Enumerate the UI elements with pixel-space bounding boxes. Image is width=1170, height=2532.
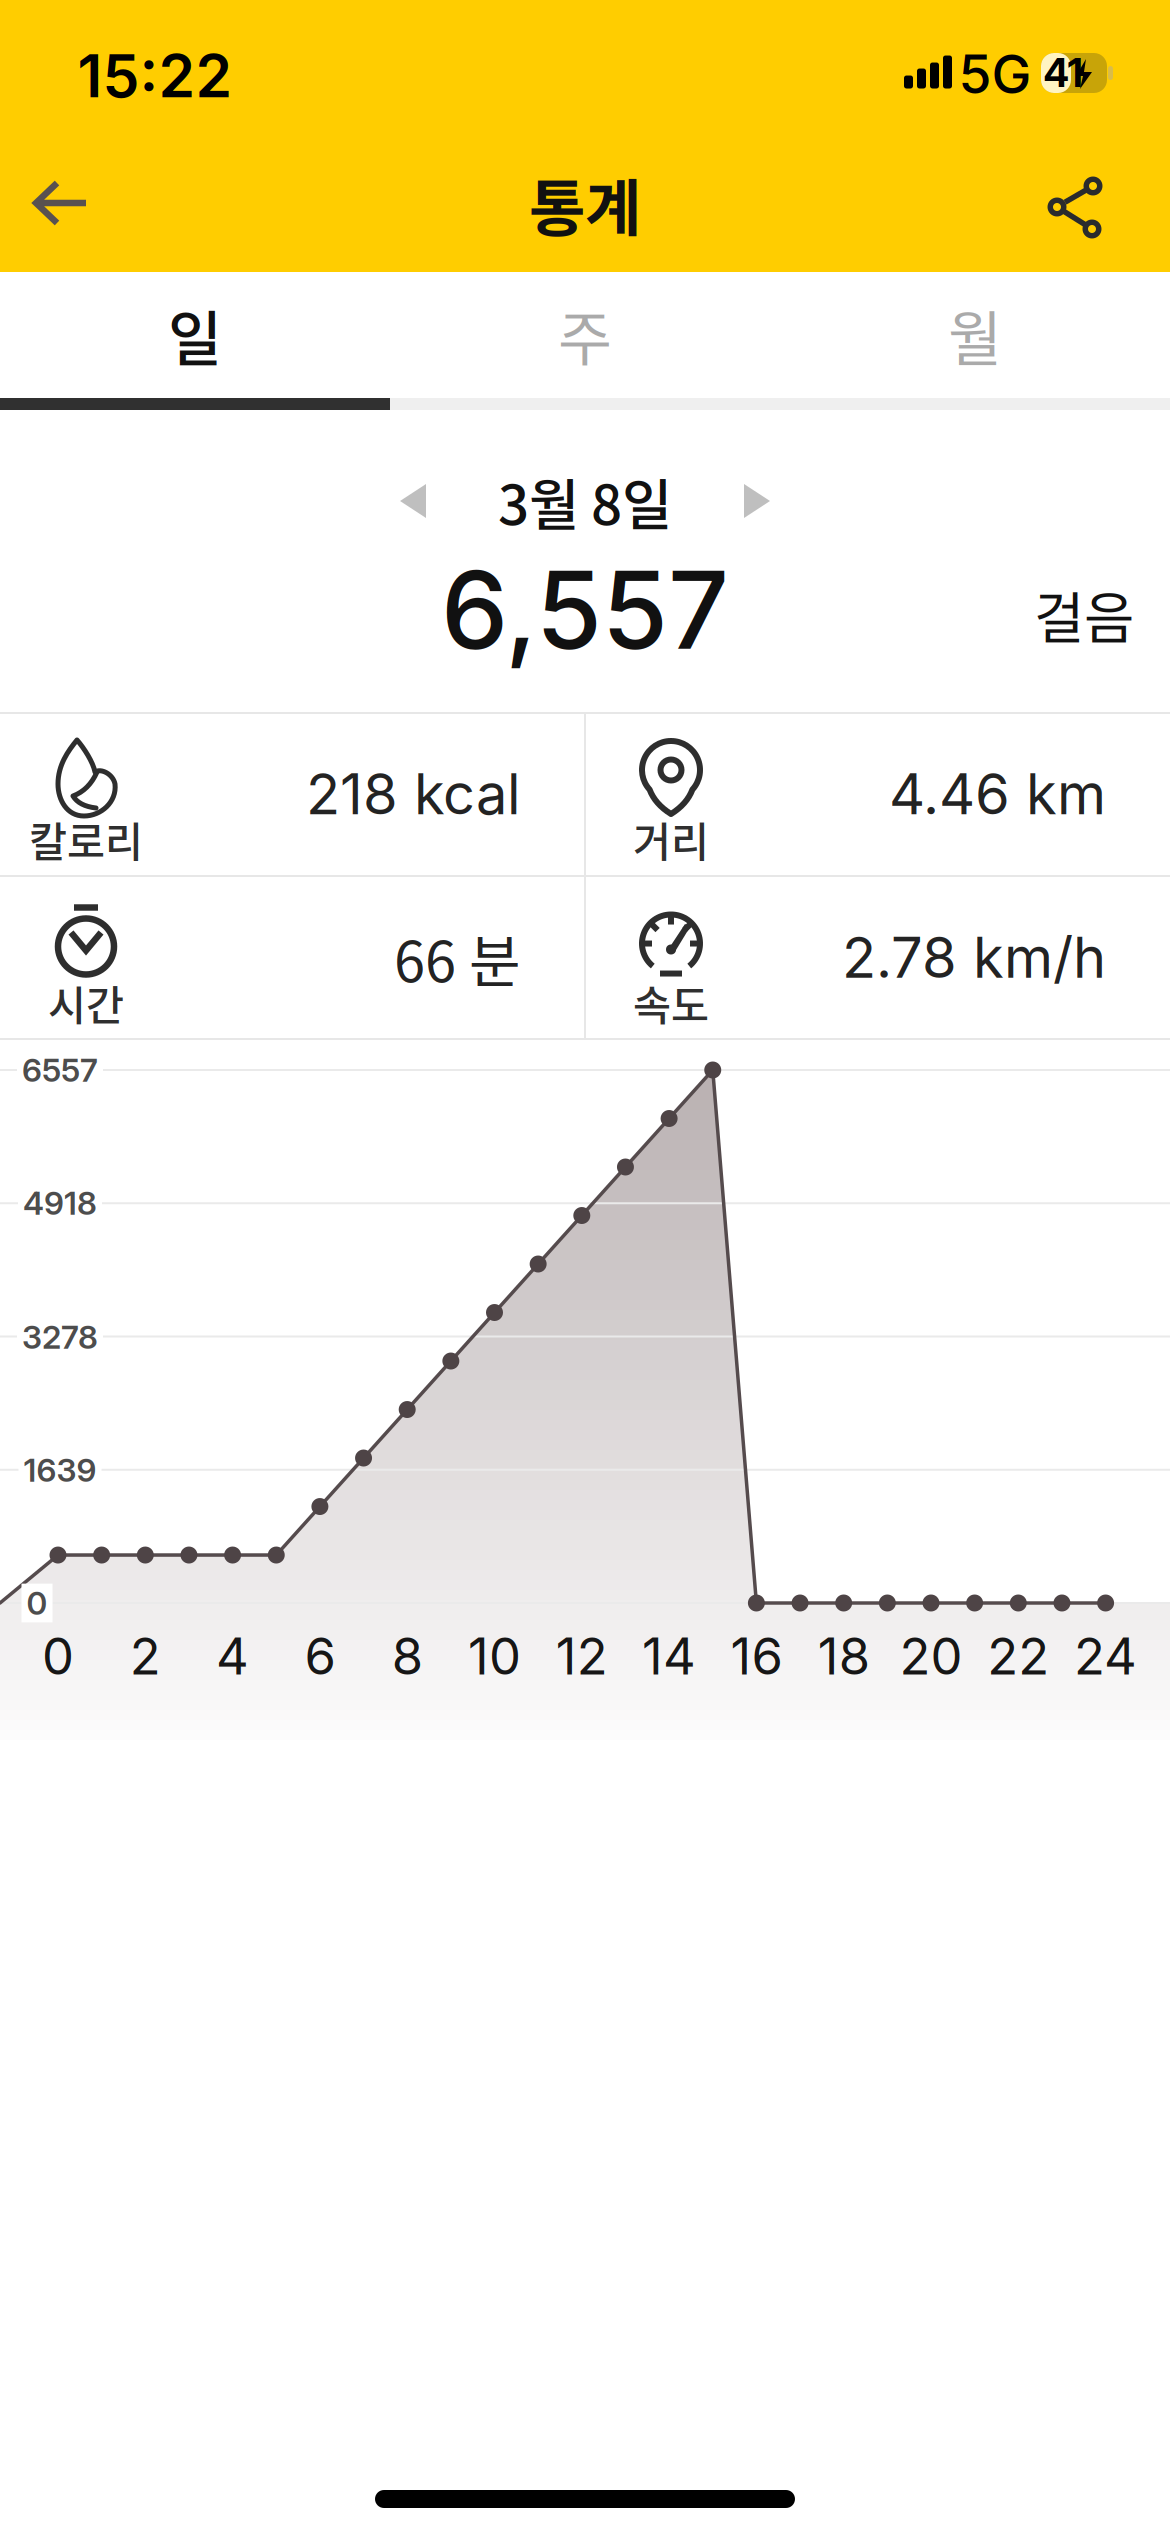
staticText: 10 [468, 1625, 521, 1687]
staticText: 12 [556, 1625, 608, 1687]
button[interactable]: 월 [780, 272, 1170, 398]
staticText: 월 [948, 292, 1002, 377]
staticText: 속도 [633, 973, 709, 1032]
staticText: 5G [958, 42, 1031, 106]
staticText: 4918 [23, 1184, 97, 1222]
staticText: 거리 [633, 809, 709, 869]
button[interactable]: Next day [744, 484, 770, 518]
staticText: 3월 8일 [498, 461, 672, 541]
staticText: 4.46 km [889, 760, 1106, 828]
staticText: 통계 [529, 160, 641, 248]
staticText: 15:22 [77, 40, 232, 111]
button[interactable]: 일 [0, 272, 390, 398]
staticText: 18 [818, 1625, 870, 1687]
button[interactable]: Back [33, 180, 89, 226]
button[interactable]: Previous day [400, 484, 426, 518]
staticText: 3278 [22, 1318, 98, 1356]
staticText: 22 [987, 1625, 1049, 1687]
staticText: 16 [730, 1625, 782, 1687]
button[interactable]: Share [1042, 175, 1106, 239]
staticText: 218 kcal [306, 760, 521, 828]
staticText: 4 [216, 1625, 249, 1687]
staticText: 0 [26, 1584, 47, 1622]
staticText: 주 [558, 292, 612, 377]
staticText: 6 [304, 1625, 335, 1687]
staticText: 6557 [22, 1051, 98, 1089]
staticText: 칼로리 [29, 809, 143, 869]
staticText: 일 [168, 292, 222, 377]
staticText: 0 [42, 1625, 74, 1687]
staticText: 14 [642, 1625, 696, 1687]
staticText: 41 [1043, 50, 1082, 96]
staticText: 20 [899, 1625, 962, 1687]
staticText: 2.78 km/h [842, 924, 1106, 991]
staticText: 66 분 [394, 917, 521, 998]
staticText: 2 [130, 1625, 161, 1687]
staticText: 걸음 [1034, 574, 1134, 654]
staticText: 8 [392, 1625, 423, 1687]
staticText: 6,557 [441, 545, 729, 675]
button[interactable]: 주 [390, 272, 780, 398]
staticText: 시간 [48, 973, 124, 1032]
staticText: 24 [1074, 1625, 1137, 1687]
staticText: 1639 [23, 1451, 96, 1489]
